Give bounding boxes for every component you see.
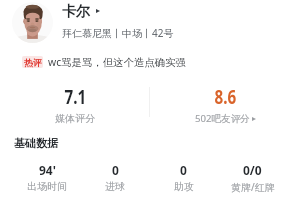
staticText: 卡尔 bbox=[62, 3, 90, 21]
staticText: wc骂是骂，但这个造点确实强 bbox=[48, 55, 186, 69]
staticText: 助攻 bbox=[174, 180, 194, 193]
button[interactable]: wc骂是骂，但这个造点确实强 bbox=[48, 55, 186, 69]
button[interactable]: 8.6 bbox=[150, 83, 300, 128]
button[interactable]: 卡尔 bbox=[62, 3, 90, 21]
staticText: 0 bbox=[112, 162, 119, 178]
button[interactable]: 94' bbox=[13, 162, 81, 193]
button[interactable]: 7.1 bbox=[0, 83, 150, 128]
button[interactable]: 0 bbox=[81, 162, 149, 193]
staticText: 出场时间 bbox=[27, 180, 67, 193]
staticText: 0 bbox=[180, 162, 187, 178]
button[interactable]: Player photo bbox=[12, 2, 53, 43]
staticText: 黄牌/红牌 bbox=[231, 180, 275, 194]
staticText: 热评 bbox=[24, 57, 42, 68]
staticText: 502吧友评分 bbox=[195, 112, 250, 125]
button[interactable]: 0 bbox=[149, 162, 218, 193]
staticText: 8.6 bbox=[214, 83, 236, 110]
button[interactable]: 0/0 bbox=[218, 162, 287, 194]
staticText: 媒体评分 bbox=[55, 112, 95, 125]
staticText: 基础数据 bbox=[14, 136, 58, 150]
button[interactable]: 热评 bbox=[22, 56, 43, 68]
staticText: 0/0 bbox=[243, 162, 262, 178]
staticText: 7.1 bbox=[64, 83, 86, 110]
staticText: 进球 bbox=[105, 180, 125, 193]
staticText: 94' bbox=[39, 162, 56, 178]
staticText: 拜仁慕尼黑丨中场丨42号 bbox=[62, 26, 174, 40]
